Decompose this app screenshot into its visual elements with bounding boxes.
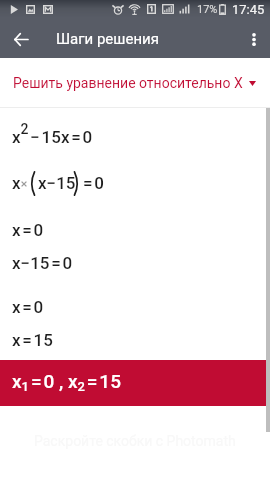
button[interactable]: x1 = 0 , x2 = 15: [0, 360, 270, 406]
button[interactable]: Решить уравнение относительно X: [0, 58, 270, 107]
button[interactable]: Back: [0, 18, 40, 58]
staticText: x2 − 15x = 0: [12, 121, 93, 147]
staticText: Решить уравнение относительно X: [13, 75, 243, 91]
staticText: x1 = 0 , x2 = 15: [12, 370, 121, 394]
staticText: = 0: [83, 173, 104, 193]
button[interactable]: More options: [238, 18, 270, 58]
staticText: 17%: [197, 3, 218, 16]
staticText: x−15 = 0: [12, 253, 73, 273]
staticText: x = 0: [12, 220, 44, 240]
staticText: x−15: [38, 173, 76, 193]
staticText: 17:45: [232, 2, 265, 17]
staticText: x = 15: [12, 330, 53, 350]
staticText: x = 0: [12, 297, 44, 317]
staticText: x: [12, 173, 21, 193]
staticText: Шаги решения: [56, 30, 159, 48]
